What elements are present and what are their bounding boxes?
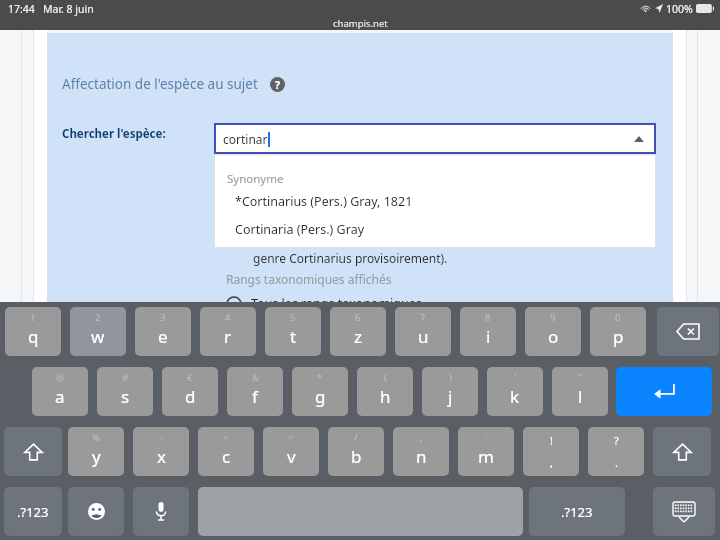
button[interactable]: *	[292, 367, 348, 416]
staticText: c	[222, 445, 231, 468]
staticText: "	[578, 371, 582, 384]
button[interactable]: Aide	[270, 77, 285, 92]
button[interactable]: 8	[460, 307, 516, 356]
button[interactable]: Emoji	[68, 487, 124, 536]
staticText: i	[486, 325, 491, 348]
button[interactable]: Majuscule	[4, 427, 62, 476]
staticText: 8	[485, 311, 491, 324]
staticText: 5	[290, 311, 296, 324]
staticText: champis.net	[333, 17, 388, 30]
staticText: k	[510, 385, 520, 408]
staticText: Affectation de l'espèce au sujet	[62, 75, 258, 93]
button[interactable]: 2	[70, 307, 126, 356]
staticText: j	[448, 385, 453, 408]
button[interactable]: +	[198, 427, 254, 476]
staticText: Synonyme	[227, 171, 284, 187]
staticText: genre Cortinarius provisoirement).	[253, 250, 448, 266]
staticText: :	[485, 431, 488, 444]
staticText: 2	[95, 311, 101, 324]
button[interactable]: '	[487, 367, 543, 416]
staticText: @	[56, 371, 65, 384]
button[interactable]: Retour arrière	[657, 307, 719, 356]
staticText: Chercher l'espèce:	[62, 126, 166, 142]
button[interactable]: #	[97, 367, 153, 416]
staticText: '	[514, 371, 517, 384]
button[interactable]: %	[68, 427, 124, 476]
staticText: .	[615, 455, 618, 470]
button[interactable]: 1	[5, 307, 61, 356]
staticText: €	[187, 371, 193, 384]
button[interactable]: €	[162, 367, 218, 416]
button[interactable]: 4	[200, 307, 256, 356]
staticText: a	[55, 385, 65, 408]
button[interactable]: cortinar	[214, 123, 656, 154]
button[interactable]: =	[263, 427, 319, 476]
button[interactable]: Majuscule	[653, 427, 711, 476]
button[interactable]: *Cortinarius (Pers.) Gray, 1821	[214, 187, 656, 215]
button[interactable]: /	[328, 427, 384, 476]
button[interactable]: .?123	[4, 487, 62, 536]
button[interactable]: &	[227, 367, 283, 416]
staticText: s	[121, 385, 130, 408]
staticText: /	[354, 431, 358, 444]
staticText: l	[578, 385, 583, 408]
staticText: Mar. 8 juin	[43, 2, 94, 16]
button[interactable]: Entrée	[616, 367, 712, 416]
staticText: b	[351, 445, 362, 468]
button[interactable]: Fermer le clavier	[653, 487, 715, 536]
staticText: f	[252, 385, 258, 408]
button[interactable]: 7	[395, 307, 451, 356]
staticText: p	[613, 325, 624, 348]
staticText: 4	[225, 311, 231, 324]
staticText: 7	[420, 311, 426, 324]
button[interactable]: 6	[330, 307, 386, 356]
staticText: -	[159, 431, 163, 444]
staticText: o	[548, 325, 559, 348]
staticText: .?123	[17, 503, 49, 521]
button[interactable]: !	[523, 427, 579, 476]
button[interactable]: :	[458, 427, 514, 476]
button[interactable]: .?123	[529, 487, 625, 536]
staticText: 0	[615, 311, 621, 324]
staticText: =	[288, 431, 294, 444]
button[interactable]: @	[32, 367, 88, 416]
staticText: w	[91, 325, 105, 348]
staticText: 3	[160, 311, 166, 324]
staticText: g	[315, 385, 326, 408]
staticText: #	[122, 371, 129, 384]
staticText: +	[223, 431, 229, 444]
button[interactable]: (	[357, 367, 413, 416]
staticText: (	[384, 371, 387, 384]
button[interactable]: Cortinaria (Pers.) Gray	[214, 215, 656, 243]
button[interactable]: -	[133, 427, 189, 476]
staticText: Cortinaria (Pers.) Gray	[235, 221, 365, 238]
staticText: e	[158, 325, 168, 348]
staticText: cortinar	[223, 131, 268, 147]
staticText: ?	[614, 433, 619, 448]
button[interactable]: "	[552, 367, 608, 416]
staticText: n	[416, 445, 427, 468]
staticText: ,	[550, 455, 553, 470]
staticText: 17:44	[8, 2, 35, 16]
button[interactable]: 9	[525, 307, 581, 356]
staticText: Tous les rangs taxonomiques	[251, 295, 422, 312]
button[interactable]: 3	[135, 307, 191, 356]
button[interactable]: 5	[265, 307, 321, 356]
staticText: u	[418, 325, 429, 348]
staticText: 9	[550, 311, 556, 324]
staticText: &	[252, 371, 259, 384]
staticText: x	[157, 445, 166, 468]
button[interactable]: 0	[590, 307, 646, 356]
button[interactable]: ?	[588, 427, 644, 476]
staticText: v	[287, 445, 296, 468]
staticText: .?123	[561, 503, 593, 521]
staticText: !	[550, 433, 553, 448]
button[interactable]: )	[422, 367, 478, 416]
button[interactable]: Saisie vocale	[133, 487, 189, 536]
staticText: t	[290, 325, 297, 348]
button[interactable]: ;	[393, 427, 449, 476]
staticText: m	[478, 445, 494, 468]
staticText: 100%	[666, 2, 693, 16]
staticText: *	[317, 371, 323, 384]
